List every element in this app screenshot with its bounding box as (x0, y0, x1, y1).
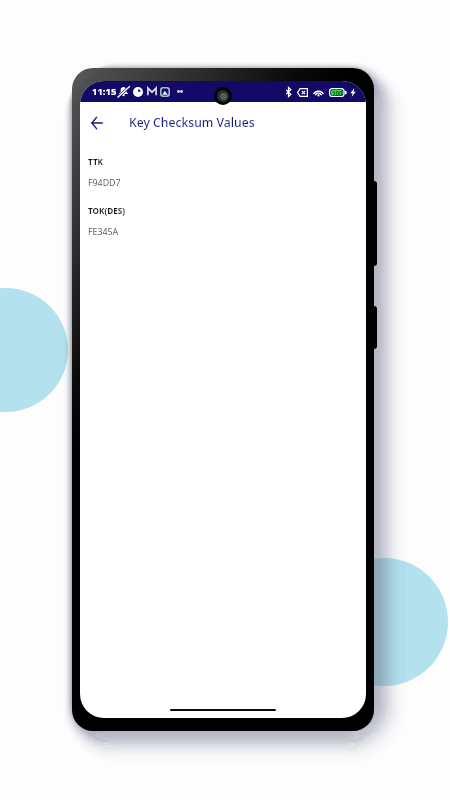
staticText: F94DD7 (88, 177, 121, 189)
button[interactable]: Back (84, 110, 110, 136)
staticText: TOK(DES) (88, 205, 126, 216)
staticText: Key Checksum Values (129, 114, 255, 131)
staticText: TTK (88, 156, 104, 167)
button[interactable]: TOK(DES) (80, 205, 366, 238)
staticText: 100 (332, 89, 343, 97)
button[interactable]: TTK (80, 156, 366, 189)
staticText: FE345A (88, 226, 119, 238)
staticText: 11:15 (92, 85, 117, 98)
